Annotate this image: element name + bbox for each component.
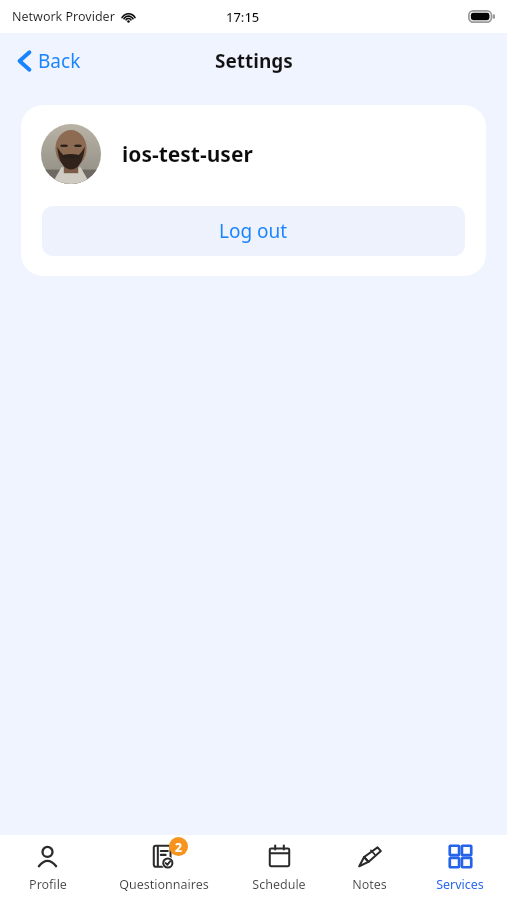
staticText: Profile <box>29 876 67 893</box>
button[interactable]: Log out <box>42 206 465 256</box>
staticText: ios-test-user <box>122 140 253 169</box>
button[interactable]: Back <box>10 42 89 80</box>
staticText: 2 <box>175 839 182 855</box>
staticText: Log out <box>219 218 288 244</box>
staticText: Network Provider <box>12 8 115 25</box>
button[interactable]: Services <box>413 835 507 900</box>
button[interactable]: Notes <box>326 835 413 900</box>
button[interactable]: Schedule <box>232 835 326 900</box>
staticText: Settings <box>215 48 293 74</box>
button[interactable]: 2 <box>95 835 232 900</box>
staticText: Schedule <box>252 876 306 893</box>
staticText: Questionnaires <box>119 876 209 893</box>
staticText: 17:15 <box>226 8 260 26</box>
staticText: Back <box>38 48 81 74</box>
button[interactable]: Profile <box>0 835 95 900</box>
staticText: Notes <box>352 876 387 893</box>
staticText: Services <box>436 876 484 893</box>
